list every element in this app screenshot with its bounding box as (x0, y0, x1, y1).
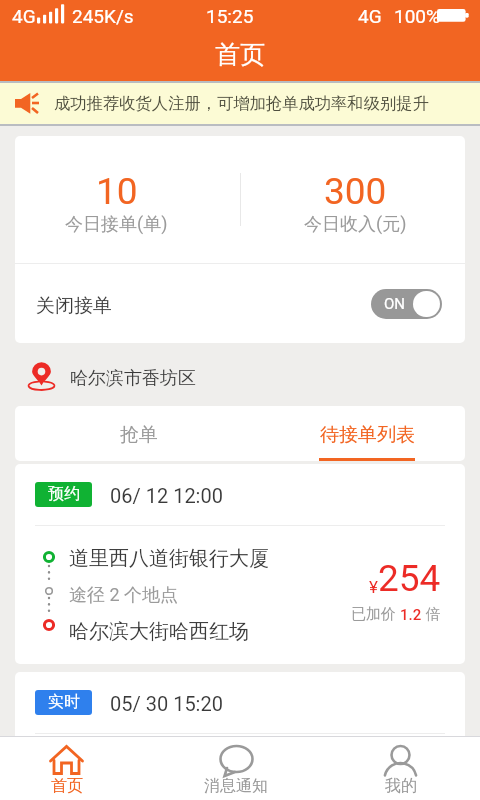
staticText: 哈尔滨市香坊区 (70, 367, 196, 390)
staticText: 100% (394, 5, 440, 27)
staticText: 今日收入(元) (304, 213, 407, 236)
staticText: 4G (12, 5, 36, 27)
staticText: 已加价 (351, 605, 400, 624)
button[interactable]: 预约 (15, 464, 465, 664)
button[interactable]: 我的 (345, 737, 455, 800)
staticText: 首页 (51, 776, 83, 796)
button[interactable]: 抢单 (84, 406, 194, 461)
staticText: ON (384, 295, 406, 313)
staticText: 今日接单(单) (65, 213, 168, 236)
staticText: 首页 (215, 39, 265, 70)
staticText: 倍 (422, 605, 441, 624)
staticText: 哈尔滨大街哈西红场 (69, 619, 249, 644)
staticText: 消息通知 (204, 776, 268, 796)
staticText: 10 (96, 170, 138, 213)
staticText: 1.2 (400, 606, 422, 624)
button[interactable]: 关闭接单 (15, 264, 465, 343)
staticText: 预约 (48, 484, 80, 504)
staticText: 关闭接单 (36, 294, 112, 318)
button[interactable]: 首页 (11, 737, 121, 800)
staticText: 06/ 12 12:00 (110, 484, 223, 507)
staticText: 245K/s (72, 5, 134, 27)
button[interactable]: 消息通知 (181, 737, 291, 800)
staticText: ¥ (369, 577, 378, 597)
staticText: 抢单 (120, 423, 158, 447)
staticText: 成功推荐收货人注册，可增加抢单成功率和级别提升 (54, 93, 429, 114)
staticText: 道里西八道街银行大厦 (69, 546, 269, 571)
staticText: 我的 (385, 776, 417, 796)
staticText: 15:25 (206, 5, 254, 27)
staticText: 05/ 30 15:20 (110, 692, 223, 715)
staticText: 途径 2 个地点 (69, 584, 179, 607)
button[interactable]: Toggle accepting orders (371, 289, 442, 319)
staticText: 待接单列表 (320, 423, 415, 447)
staticText: 实时 (48, 692, 80, 712)
button[interactable]: 实时 (15, 672, 465, 800)
staticText: 4G (358, 5, 382, 27)
staticText: 300 (324, 170, 387, 213)
staticText: 254 (378, 557, 441, 600)
button[interactable]: 待接单列表 (312, 406, 422, 461)
